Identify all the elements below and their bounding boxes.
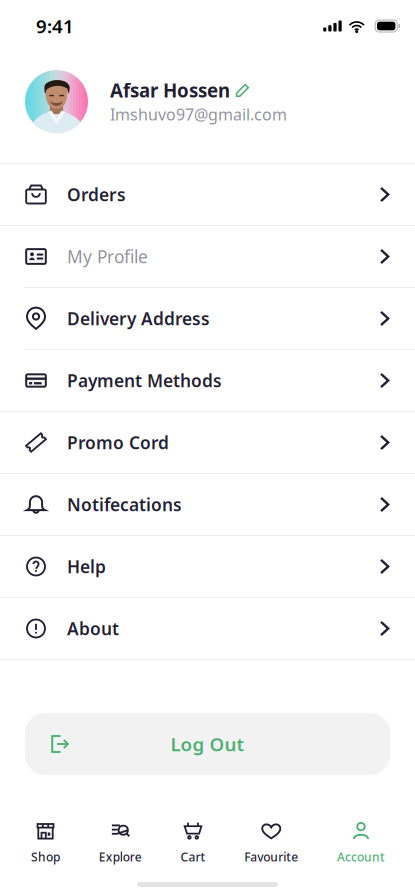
button[interactable]: Orders — [0, 164, 415, 225]
staticText: Imshuvo97@gmail.com — [110, 104, 287, 125]
button[interactable]: My Profile — [0, 226, 415, 287]
staticText: My Profile — [67, 245, 148, 268]
staticText: Account — [337, 849, 385, 865]
staticText: Afsar Hossen — [110, 78, 230, 103]
staticText: Payment Methods — [67, 369, 222, 392]
staticText: About — [67, 617, 119, 640]
staticText: Notifecations — [67, 493, 182, 516]
button[interactable]: Explore — [99, 820, 142, 865]
staticText: Delivery Address — [67, 307, 210, 330]
staticText: Explore — [99, 849, 142, 865]
staticText: Orders — [67, 183, 126, 206]
staticText: Shop — [31, 849, 60, 865]
button[interactable]: Shop — [31, 820, 60, 865]
button[interactable]: Delivery Address — [0, 288, 415, 349]
button[interactable]: Cart — [180, 820, 205, 865]
button[interactable]: Favourite — [244, 820, 298, 865]
staticText: Favourite — [244, 849, 298, 865]
button[interactable]: Promo Cord — [0, 412, 415, 473]
button[interactable]: Payment Methods — [0, 350, 415, 411]
button[interactable]: Help — [0, 536, 415, 597]
button[interactable]: Account — [337, 820, 385, 865]
button[interactable]: About — [0, 598, 415, 659]
button[interactable]: Log Out — [25, 713, 390, 775]
staticText: Log Out — [170, 732, 244, 756]
staticText: Help — [67, 555, 106, 578]
staticText: 9:41 — [36, 14, 74, 38]
staticText: Cart — [180, 849, 205, 865]
staticText: Promo Cord — [67, 431, 169, 454]
button[interactable]: Notifecations — [0, 474, 415, 535]
